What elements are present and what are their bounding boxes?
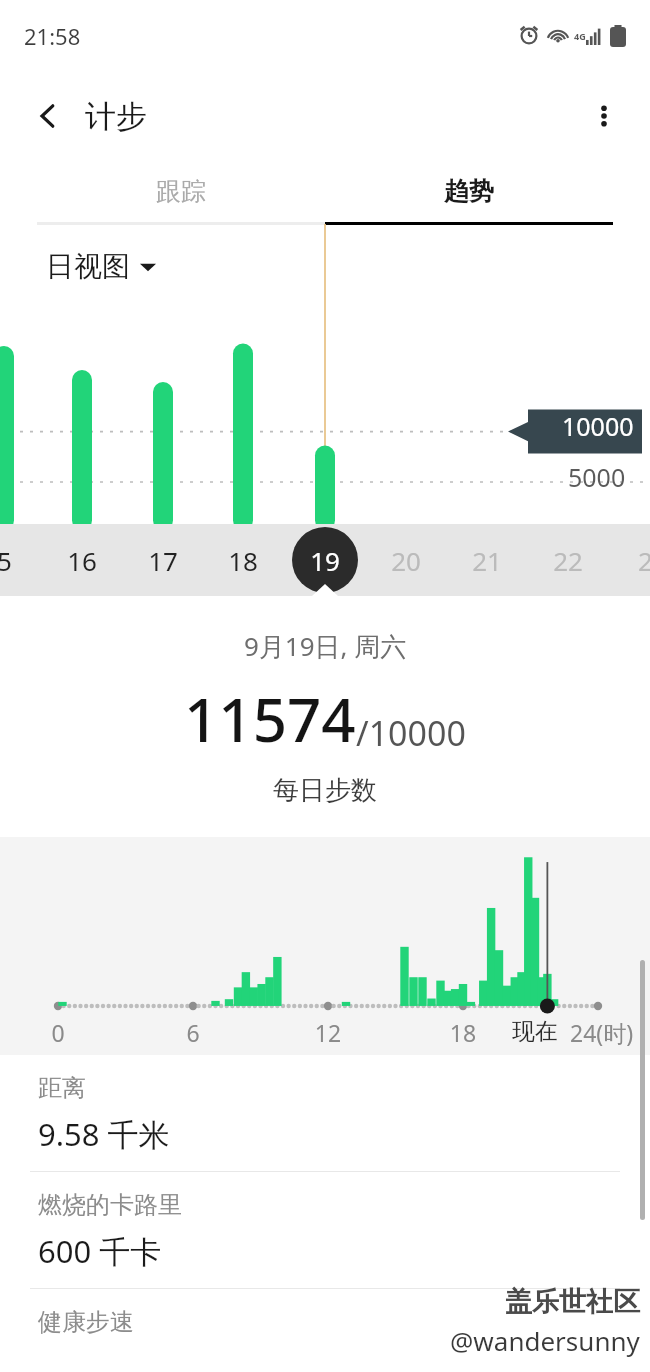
staticText: 燃烧的卡路里 [38, 1190, 182, 1220]
staticText: 6 [173, 1017, 213, 1048]
button[interactable]: 19 [301, 524, 349, 596]
staticText: 9月19日, 周六 [244, 628, 407, 664]
button[interactable]: 燃烧的卡路里 [0, 1172, 650, 1288]
button[interactable]: 18 [219, 524, 267, 596]
staticText: 24(时) [570, 1017, 634, 1048]
button[interactable]: Back [20, 88, 76, 144]
button[interactable]: 距离 [0, 1055, 650, 1171]
staticText: @wandersunny [450, 1323, 640, 1358]
staticText: 5000 [568, 460, 626, 494]
staticText: 11574 [184, 678, 356, 760]
staticText: 19 [310, 543, 340, 578]
staticText: 每日步数 [273, 774, 377, 807]
button[interactable]: 日视图 [46, 249, 156, 284]
staticText: 21:58 [24, 21, 81, 51]
staticText: 20 [391, 543, 421, 578]
staticText: 4G [574, 30, 586, 42]
button[interactable]: 5 [0, 524, 28, 596]
button[interactable]: 17 [139, 524, 187, 596]
staticText: 22 [553, 543, 583, 578]
staticText: 距离 [38, 1073, 86, 1103]
staticText: 日视图 [46, 249, 130, 284]
staticText: 10000 [562, 409, 634, 443]
staticText: 21 [472, 543, 502, 578]
staticText: 跟踪 [156, 176, 206, 207]
staticText: 18 [228, 543, 258, 578]
staticText: 18 [443, 1017, 483, 1048]
button[interactable]: 20 [382, 524, 430, 596]
staticText: 9.58 千米 [38, 1113, 170, 1155]
button[interactable]: 22 [544, 524, 592, 596]
button[interactable]: 健康步速 [0, 1289, 650, 1337]
staticText: 600 千卡 [38, 1230, 162, 1272]
staticText: 5 [0, 543, 12, 578]
staticText: 盖乐世社区 [505, 1285, 640, 1319]
button[interactable]: 16 [58, 524, 106, 596]
staticText: 17 [148, 543, 178, 578]
staticText: 计步 [85, 97, 147, 136]
staticText: 2 [638, 543, 650, 578]
staticText: 16 [67, 543, 97, 578]
button[interactable]: 趋势 [325, 160, 613, 222]
button[interactable]: 跟踪 [37, 160, 325, 222]
staticText: /10000 [356, 710, 466, 756]
staticText: 0 [38, 1017, 78, 1048]
staticText: 健康步速 [38, 1307, 134, 1337]
button[interactable]: 2 [621, 524, 650, 596]
button[interactable]: More options [576, 88, 632, 144]
staticText: 现在 [512, 1017, 558, 1046]
button[interactable]: 21 [463, 524, 511, 596]
staticText: 趋势 [444, 176, 494, 207]
staticText: 12 [308, 1017, 348, 1048]
